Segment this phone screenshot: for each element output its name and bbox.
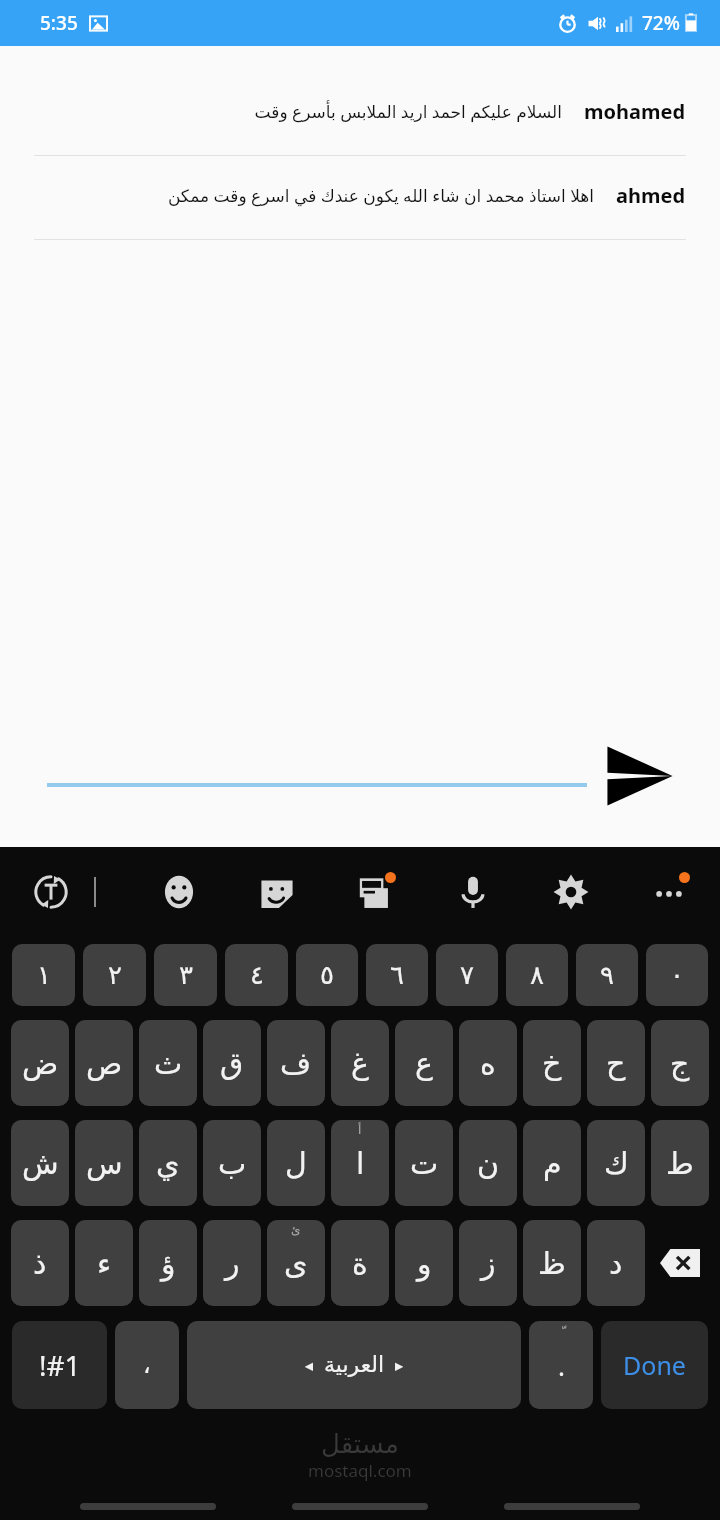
staticText: خ: [542, 1046, 562, 1081]
staticText: م: [543, 1146, 562, 1181]
button[interactable]: Backspace: [651, 1220, 709, 1306]
button[interactable]: ٨: [506, 944, 568, 1006]
button[interactable]: Voice input: [444, 863, 502, 921]
button[interactable]: ٧: [436, 944, 498, 1006]
staticText: السلام عليكم احمد اريد الملابس بأسرع وقت: [254, 100, 562, 123]
button[interactable]: ق: [203, 1020, 261, 1106]
button[interactable]: ل: [267, 1120, 325, 1206]
button[interactable]: ف: [267, 1020, 325, 1106]
staticText: ذ: [33, 1246, 47, 1281]
button[interactable]: Keyboard settings: [542, 863, 600, 921]
button[interactable]: خ: [523, 1020, 581, 1106]
button[interactable]: ش: [11, 1120, 69, 1206]
button[interactable]: ي: [139, 1120, 197, 1206]
button[interactable]: ض: [11, 1020, 69, 1106]
button[interactable]: ص: [75, 1020, 133, 1106]
button[interactable]: More options: [640, 863, 698, 921]
button[interactable]: ٦: [366, 944, 428, 1006]
staticText: ج: [670, 1046, 690, 1081]
staticText: ق: [220, 1046, 244, 1081]
button[interactable]: Emoji: [150, 863, 208, 921]
button[interactable]: ،: [115, 1321, 179, 1409]
staticText: 5:35: [40, 10, 78, 36]
button[interactable]: د: [587, 1220, 645, 1306]
button[interactable]: السلام عليكم احمد اريد الملابس بأسرع وقت: [0, 98, 720, 182]
button[interactable]: ٩: [576, 944, 638, 1006]
button[interactable]: Navigation: [80, 1503, 216, 1510]
button[interactable]: ذ: [11, 1220, 69, 1306]
button[interactable]: ٠: [646, 944, 708, 1006]
staticText: ى: [284, 1246, 308, 1281]
staticText: ahmed: [616, 182, 686, 209]
button[interactable]: غ: [331, 1020, 389, 1106]
button[interactable]: Space, Arabic: [187, 1321, 521, 1409]
staticText: ٢: [108, 960, 122, 990]
staticText: س: [86, 1146, 123, 1181]
staticText: ٠: [670, 960, 684, 990]
button[interactable]: ر: [203, 1220, 261, 1306]
staticText: ٤: [250, 960, 264, 990]
button[interactable]: ٥: [296, 944, 358, 1006]
button[interactable]: Stickers: [248, 863, 306, 921]
button[interactable]: Clipboard: [346, 863, 404, 921]
button[interactable]: Send: [600, 736, 680, 816]
button[interactable]: ب: [203, 1120, 261, 1206]
button[interactable]: س: [75, 1120, 133, 1206]
staticText: ◂: [305, 1356, 314, 1375]
button[interactable]: Navigation: [292, 1503, 428, 1510]
staticText: !#1: [39, 1346, 81, 1384]
staticText: ت: [410, 1146, 439, 1181]
button[interactable]: ز: [459, 1220, 517, 1306]
button[interactable]: ت: [395, 1120, 453, 1206]
button[interactable]: ٢: [83, 944, 146, 1006]
staticText: ؤ: [161, 1246, 176, 1281]
button[interactable]: Translate: [22, 863, 80, 921]
staticText: ٨: [530, 960, 544, 990]
staticText: ش: [22, 1146, 59, 1181]
staticText: Done: [623, 1348, 686, 1382]
staticText: ٥: [320, 960, 334, 990]
button[interactable]: ى: [267, 1220, 325, 1306]
button[interactable]: ع: [395, 1020, 453, 1106]
staticText: ط: [666, 1146, 694, 1181]
staticText: ئ: [291, 1223, 301, 1237]
button[interactable]: !#1: [12, 1321, 107, 1409]
staticText: ٦: [390, 960, 404, 990]
staticText: مستقل: [321, 1429, 399, 1459]
button[interactable]: ٣: [154, 944, 217, 1006]
button[interactable]: ن: [459, 1120, 517, 1206]
button[interactable]: ظ: [523, 1220, 581, 1306]
button[interactable]: م: [523, 1120, 581, 1206]
staticText: ل: [285, 1146, 307, 1181]
button[interactable]: ة: [331, 1220, 389, 1306]
button[interactable]: Navigation: [504, 1503, 640, 1510]
button[interactable]: ١: [12, 944, 75, 1006]
button[interactable]: ط: [651, 1120, 709, 1206]
staticText: اهلا استاذ محمد ان شاء الله يكون عندك في…: [167, 184, 594, 207]
button[interactable]: ث: [139, 1020, 197, 1106]
button[interactable]: ا: [331, 1120, 389, 1206]
staticText: غ: [351, 1046, 369, 1081]
staticText: ٣: [179, 960, 193, 990]
button[interactable]: ء: [75, 1220, 133, 1306]
button[interactable]: ج: [651, 1020, 709, 1106]
staticText: 72%: [642, 10, 680, 36]
staticText: ي: [156, 1146, 180, 1181]
button[interactable]: و: [395, 1220, 453, 1306]
button[interactable]: ٤: [225, 944, 288, 1006]
staticText: mostaql.com: [308, 1459, 412, 1482]
button[interactable]: Done: [601, 1321, 708, 1409]
staticText: ء: [97, 1246, 112, 1281]
button[interactable]: ه: [459, 1020, 517, 1106]
button[interactable]: ك: [587, 1120, 645, 1206]
staticText: ا: [356, 1146, 365, 1181]
staticText: ح: [606, 1046, 626, 1081]
staticText: ة: [352, 1246, 368, 1281]
staticText: ص: [86, 1046, 123, 1081]
staticText: ر: [225, 1246, 240, 1281]
button[interactable]: اهلا استاذ محمد ان شاء الله يكون عندك في…: [0, 182, 720, 266]
button[interactable]: ح: [587, 1020, 645, 1106]
button[interactable]: .: [529, 1321, 593, 1409]
button[interactable]: ؤ: [139, 1220, 197, 1306]
